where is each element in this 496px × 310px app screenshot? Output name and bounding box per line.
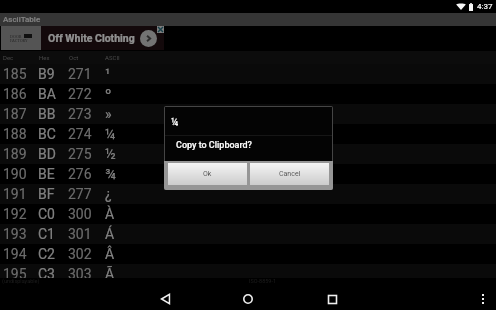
button[interactable]: 193 [0, 224, 496, 244]
staticText: Ã [105, 266, 115, 278]
staticText: 185 [3, 66, 27, 82]
staticText: Oct [69, 54, 79, 61]
staticText: 4:37 [477, 2, 493, 11]
staticText: C1 [38, 226, 55, 242]
staticText: BC [38, 126, 56, 142]
button[interactable]: Back [147, 288, 183, 310]
staticText: 191 [3, 186, 27, 202]
button[interactable]: 185 [0, 64, 496, 84]
staticText: (undisplayable) [2, 278, 40, 284]
staticText: Á [105, 226, 115, 242]
staticText: 188 [3, 126, 27, 142]
button[interactable]: Ok [168, 163, 247, 185]
button[interactable]: 192 [0, 204, 496, 224]
staticText: À [105, 206, 115, 222]
staticText: 300 [68, 206, 92, 222]
button[interactable]: 189 [0, 144, 496, 164]
staticText: B9 [38, 66, 55, 82]
staticText: Ok [203, 170, 212, 178]
staticText: 271 [68, 66, 92, 82]
staticText: BD [38, 146, 56, 162]
staticText: Â [105, 246, 115, 262]
staticText: Hex [39, 54, 50, 61]
button[interactable]: AsciiTable [0, 13, 496, 26]
staticText: BB [38, 106, 56, 122]
staticText: 276 [68, 166, 92, 182]
button[interactable]: Home [230, 288, 266, 310]
staticText: ¿ [105, 186, 112, 202]
button[interactable]: DOOR FACTORY [1, 26, 164, 50]
staticText: » [105, 106, 112, 122]
button[interactable]: 188 [0, 124, 496, 144]
staticText: ½ [105, 146, 116, 162]
button[interactable]: Cancel [250, 163, 329, 185]
staticText: 193 [3, 226, 27, 242]
staticText: 301 [68, 226, 92, 242]
staticText: C2 [38, 246, 55, 262]
staticText: º [105, 86, 112, 102]
staticText: ¼ [171, 117, 179, 129]
button[interactable]: 186 [0, 84, 496, 104]
staticText: 277 [68, 186, 92, 202]
staticText: ¹ [105, 66, 111, 82]
button[interactable]: 187 [0, 104, 496, 124]
staticText: 195 [3, 266, 27, 278]
staticText: 303 [68, 266, 92, 278]
staticText: DOOR FACTORY [10, 34, 28, 43]
staticText: C0 [38, 206, 55, 222]
button[interactable]: 191 [0, 184, 496, 204]
staticText: 275 [68, 146, 92, 162]
staticText: ISO-8859-1 [249, 278, 277, 284]
staticText: C3 [38, 266, 55, 278]
button[interactable]: 194 [0, 244, 496, 264]
staticText: Cancel [279, 170, 301, 178]
staticText: 186 [3, 86, 27, 102]
staticText: ¼ [105, 126, 116, 142]
staticText: 272 [68, 86, 92, 102]
staticText: ¾ [105, 166, 116, 182]
staticText: BA [38, 86, 56, 102]
staticText: BE [38, 166, 55, 182]
staticText: 273 [68, 106, 92, 122]
staticText: AsciiTable [3, 15, 41, 24]
button[interactable]: Recent apps [314, 288, 350, 310]
staticText: 192 [3, 206, 27, 222]
staticText: Copy to Clipboard? [176, 140, 252, 151]
button[interactable]: 190 [0, 164, 496, 184]
staticText: 190 [3, 166, 27, 182]
staticText: 302 [68, 246, 92, 262]
staticText: BF [38, 186, 55, 202]
button[interactable]: Close ad [157, 26, 164, 33]
staticText: Off White Clothing [48, 32, 135, 44]
staticText: 187 [3, 106, 27, 122]
button[interactable]: 195 [0, 264, 496, 278]
button[interactable]: More options [472, 288, 493, 310]
staticText: 274 [68, 126, 92, 142]
staticText: Dec [3, 54, 14, 61]
staticText: 189 [3, 146, 27, 162]
staticText: 194 [3, 246, 27, 262]
staticText: ASCII [105, 54, 120, 61]
